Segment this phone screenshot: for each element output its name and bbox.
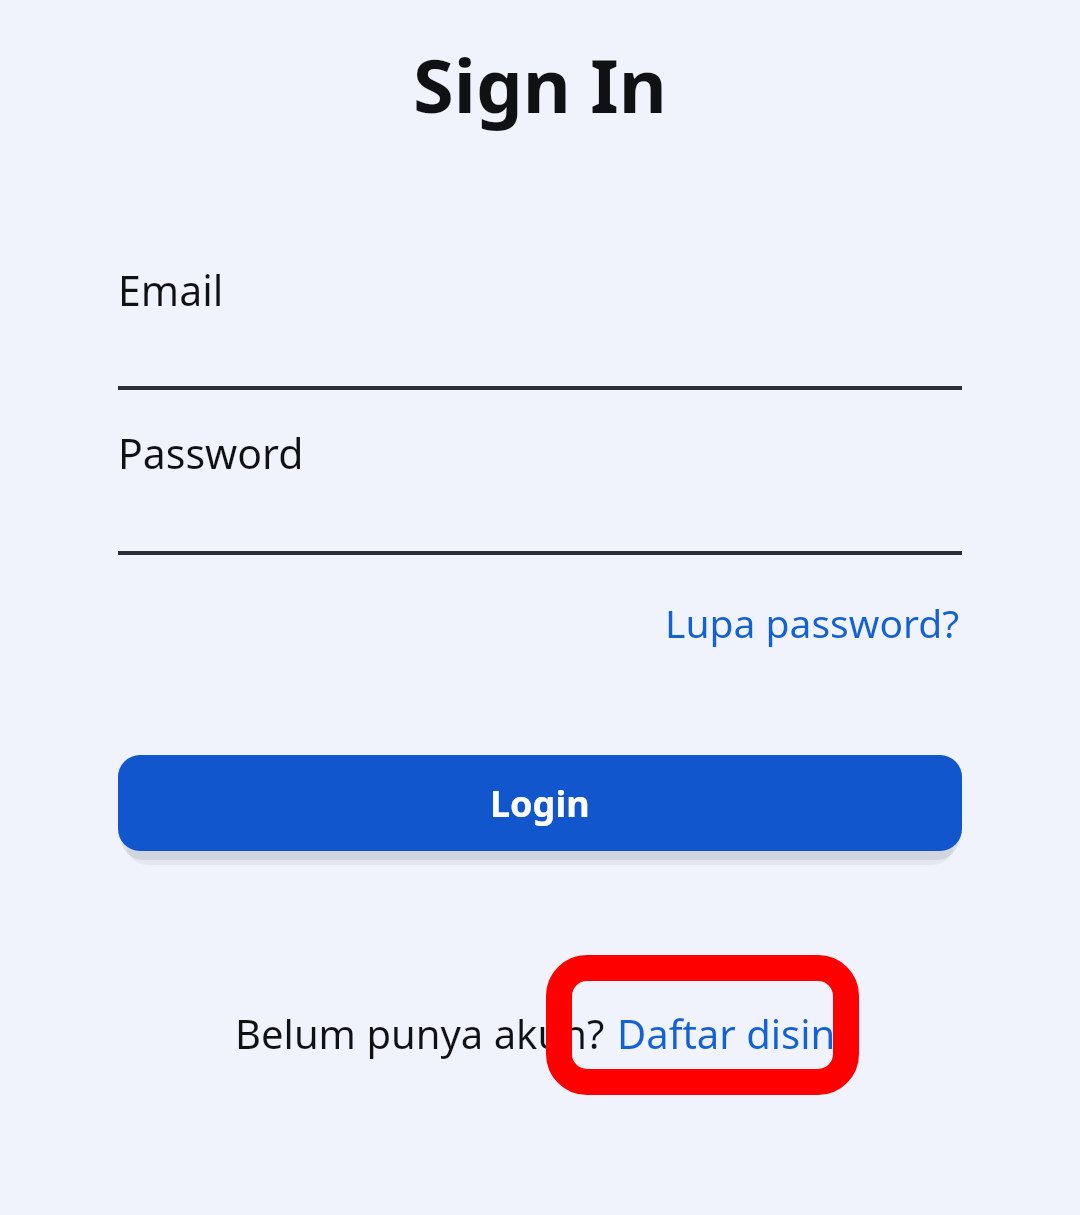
staticText: Sign In	[413, 34, 667, 135]
other: Highlight around Daftar disini link	[546, 955, 859, 1095]
button[interactable]: Daftar disini	[617, 1006, 846, 1060]
button[interactable]: Login	[118, 755, 962, 851]
staticText: Lupa password?	[665, 596, 960, 649]
staticText: Daftar disini	[617, 1006, 846, 1060]
staticText: Password	[118, 425, 304, 481]
staticText: Login	[490, 779, 590, 828]
button[interactable]: Lupa password?	[663, 590, 962, 655]
staticText: Email	[118, 262, 224, 318]
staticText: Belum punya akun?	[235, 1006, 605, 1060]
